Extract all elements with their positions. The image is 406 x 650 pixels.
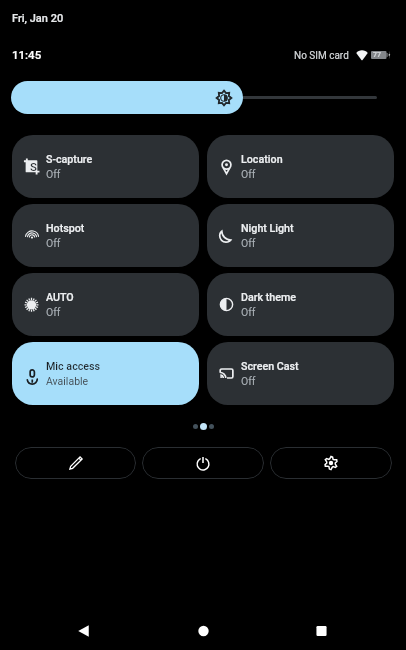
staticText: Dark theme	[241, 291, 297, 304]
button[interactable]: Power	[142, 447, 264, 479]
button[interactable]: Hotspot	[12, 204, 199, 267]
staticText: AUTO	[46, 291, 74, 304]
staticText: Off	[46, 306, 61, 318]
staticText: Off	[241, 375, 256, 387]
button[interactable]: Night Light	[207, 204, 394, 267]
staticText: Hotspot	[46, 222, 85, 235]
button[interactable]: S	[12, 135, 199, 198]
button[interactable]: Brightness	[11, 81, 243, 114]
button[interactable]: Recents	[297, 610, 345, 650]
staticText: 11:45	[12, 48, 42, 61]
button[interactable]: Back	[59, 610, 107, 650]
staticText: Mic access	[46, 360, 101, 373]
button[interactable]: Settings	[270, 447, 392, 479]
staticText: S	[30, 160, 37, 173]
staticText: Screen Cast	[241, 360, 299, 373]
button[interactable]: Edit	[15, 447, 136, 479]
button[interactable]: Location	[207, 135, 394, 198]
staticText: Off	[241, 306, 256, 318]
staticText: Available	[46, 375, 89, 387]
staticText: Off	[241, 168, 256, 180]
staticText: Off	[46, 237, 61, 249]
button[interactable]: Mic access	[12, 342, 199, 405]
staticText: Location	[241, 153, 283, 166]
staticText: 77	[373, 51, 382, 59]
button[interactable]: Dark theme	[207, 273, 394, 336]
button[interactable]: AUTO	[12, 273, 199, 336]
staticText: No SIM card	[294, 50, 349, 62]
staticText: S-capture	[46, 153, 93, 166]
staticText: Off	[241, 237, 256, 249]
button[interactable]: Screen Cast	[207, 342, 394, 405]
staticText: Night Light	[241, 222, 294, 235]
staticText: Off	[46, 168, 61, 180]
button[interactable]: Home	[179, 610, 227, 650]
staticText: Fri, Jan 20	[12, 12, 64, 25]
